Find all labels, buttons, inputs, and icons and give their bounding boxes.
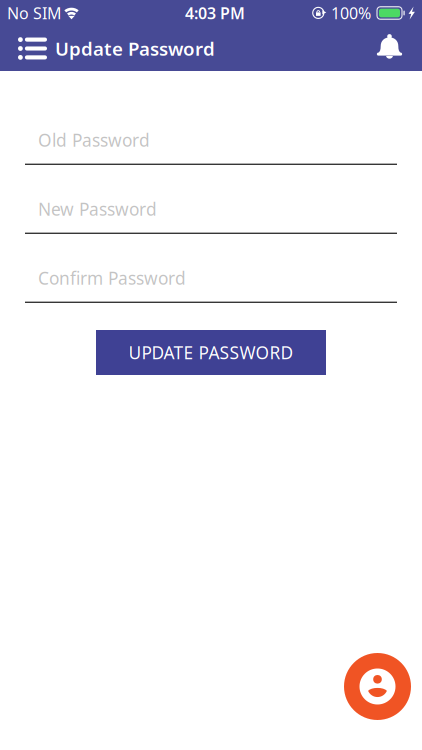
staticText: No SIM [7,2,62,24]
button[interactable]: Old Password [25,117,397,165]
staticText: Old Password [38,129,150,152]
button[interactable]: Confirm Password [25,255,397,303]
button[interactable]: New Password [25,186,397,234]
staticText: Update Password [55,36,215,61]
button[interactable]: Profile [344,653,411,720]
staticText: UPDATE PASSWORD [128,341,293,364]
staticText: 4:03 PM [185,2,245,24]
button[interactable]: UPDATE PASSWORD [96,330,326,375]
button[interactable]: Notifications [367,29,422,68]
staticText: Confirm Password [38,267,186,290]
staticText: New Password [38,198,157,221]
staticText: 100% [331,2,371,24]
button[interactable]: Menu [0,29,55,68]
